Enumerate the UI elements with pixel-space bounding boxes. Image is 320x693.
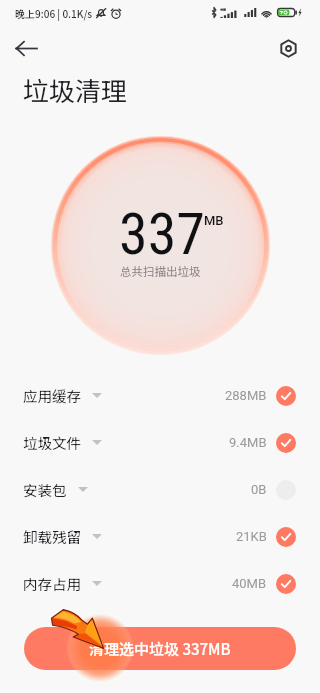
staticText: 0B (251, 482, 267, 497)
staticText: 337 (119, 200, 205, 268)
staticText: 垃圾文件 (23, 432, 81, 453)
staticText: 288MB (225, 388, 267, 403)
button[interactable]: Back (8, 30, 44, 66)
button[interactable]: 内存占用 (0, 560, 320, 607)
button[interactable]: Settings (270, 30, 306, 66)
button[interactable]: Selected (276, 574, 296, 594)
staticText: 安装包 (23, 479, 67, 500)
button[interactable]: Not selected (276, 480, 296, 500)
button[interactable]: 应用缓存 (0, 372, 320, 419)
staticText: 21KB (236, 529, 267, 544)
staticText: 内存占用 (23, 573, 81, 594)
staticText: MB (204, 213, 224, 228)
button[interactable]: Selected (276, 433, 296, 453)
button[interactable]: 清理选中垃圾 337MB (24, 627, 296, 670)
button[interactable]: 安装包 (0, 466, 320, 513)
staticText: 卸载残留 (23, 526, 81, 547)
staticText: 晚上9:06 | 0.1K/s (15, 6, 93, 20)
button[interactable]: Selected (276, 527, 296, 547)
staticText: 应用缓存 (23, 385, 81, 406)
button[interactable]: 卸载残留 (0, 513, 320, 560)
staticText: 清理选中垃圾 337MB (89, 638, 231, 660)
staticText: 9.4MB (229, 435, 267, 450)
staticText: 40MB (232, 576, 267, 591)
button[interactable]: 垃圾文件 (0, 419, 320, 466)
staticText: 总共扫描出垃圾 (120, 263, 201, 280)
staticText: 垃圾清理 (23, 71, 128, 109)
button[interactable]: Selected (276, 386, 296, 406)
